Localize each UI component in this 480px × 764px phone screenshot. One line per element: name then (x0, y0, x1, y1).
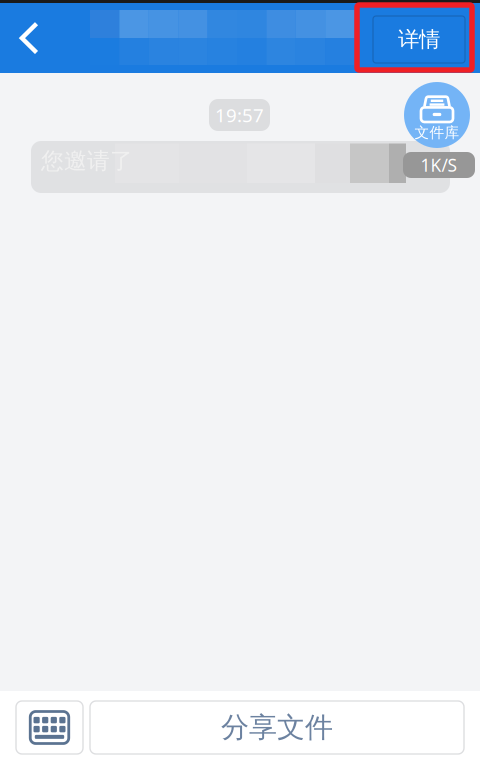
button[interactable]: Keyboard (16, 701, 83, 754)
button[interactable]: 文件库 (404, 82, 470, 148)
button[interactable]: 分享文件 (90, 701, 464, 754)
button[interactable]: Back (0, 3, 58, 73)
staticText: 详情 (398, 26, 440, 53)
staticText: 1K/S (420, 153, 457, 176)
button[interactable]: 详情 (357, 5, 472, 70)
staticText: 文件库 (414, 123, 459, 141)
staticText: 您邀请了 (41, 147, 133, 175)
staticText: 19:57 (215, 103, 264, 127)
staticText: 分享文件 (221, 710, 333, 745)
